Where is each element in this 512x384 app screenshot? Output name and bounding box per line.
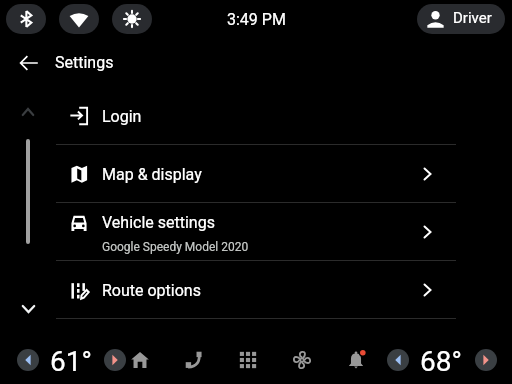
button[interactable]: Apps [231,343,265,377]
staticText: Vehicle settings [102,213,215,232]
button[interactable]: Increase passenger temperature [475,349,497,371]
button[interactable]: Decrease passenger temperature [387,349,409,371]
button[interactable]: Bluetooth [6,4,46,34]
button[interactable]: Driver [417,4,505,34]
button[interactable]: Scroll down [16,298,40,322]
staticText: Route options [102,281,201,300]
staticText: Driver [453,9,492,27]
button[interactable]: 68° [420,345,462,378]
button[interactable]: Map & display [0,145,512,203]
button[interactable]: Login [0,87,512,145]
button[interactable]: Notifications [339,343,373,377]
button[interactable]: Back [13,47,45,79]
button[interactable]: Increase driver temperature [104,349,126,371]
button[interactable]: Route options [0,261,512,319]
button[interactable]: Brightness [112,4,152,34]
button[interactable]: Scroll up [16,100,40,124]
button[interactable]: Phone [177,343,211,377]
staticText: Map & display [102,165,202,184]
staticText: Google Speedy Model 2020 [102,240,249,254]
button[interactable]: 61° [50,345,92,378]
button[interactable]: Climate [285,343,319,377]
staticText: Settings [55,53,114,72]
button[interactable]: Decrease driver temperature [17,349,39,371]
button[interactable]: Wi-Fi [59,4,99,34]
button[interactable]: Vehicle settings [0,203,512,261]
button[interactable]: Home [123,343,157,377]
staticText: 3:49 PM [227,10,286,29]
staticText: Login [102,107,142,126]
